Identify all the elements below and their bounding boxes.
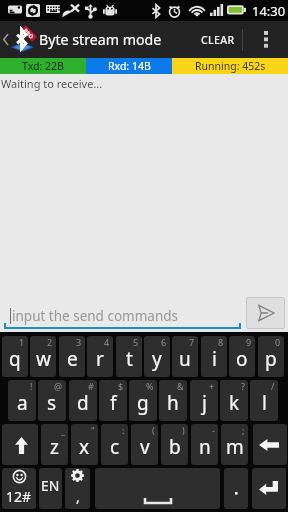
- button[interactable]: Space: [95, 468, 220, 509]
- button[interactable]: -: [191, 424, 218, 465]
- staticText: v: [140, 434, 150, 460]
- staticText: m: [226, 434, 244, 460]
- staticText: j: [202, 390, 207, 416]
- staticText: &: [177, 380, 184, 392]
- staticText: @: [54, 380, 63, 392]
- staticText: r: [96, 346, 104, 372]
- button[interactable]: ?: [220, 380, 248, 421]
- staticText: ,: [76, 487, 80, 506]
- button[interactable]: +: [190, 380, 218, 421]
- staticText: $: [118, 380, 124, 392]
- staticText: b: [169, 434, 181, 460]
- button[interactable]: ;: [221, 424, 248, 465]
- button[interactable]: !: [8, 380, 36, 421]
- button[interactable]: 8: [201, 336, 227, 377]
- staticText: Byte stream mode: [39, 30, 162, 49]
- staticText: Waiting to receive...: [1, 76, 103, 91]
- staticText: 4: [104, 336, 110, 348]
- button[interactable]: /: [250, 380, 278, 421]
- button[interactable]: ": [71, 424, 98, 465]
- staticText: x: [79, 434, 90, 460]
- button[interactable]: Rxd: 14B: [86, 58, 172, 74]
- staticText: 6: [161, 336, 167, 348]
- staticText: +: [209, 380, 215, 392]
- staticText: h: [167, 390, 179, 416]
- button[interactable]: _: [41, 424, 68, 465]
- button[interactable]: [224, 468, 248, 509]
- button[interactable]: Send: [246, 297, 285, 329]
- staticText: a: [17, 390, 28, 416]
- button[interactable]: EN: [39, 468, 62, 509]
- button[interactable]: Txd: 22B: [0, 58, 86, 74]
- button[interactable]: 5: [116, 336, 142, 377]
- button[interactable]: Backspace: [253, 424, 287, 465]
- button[interactable]: 9: [229, 336, 255, 377]
- staticText: c: [110, 434, 120, 460]
- button[interactable]: &: [159, 380, 187, 421]
- staticText: e: [67, 346, 78, 372]
- staticText: ;: [242, 424, 245, 436]
- staticText: y: [152, 346, 162, 372]
- staticText: q: [9, 346, 21, 372]
- staticText: o: [236, 346, 248, 372]
- staticText: i: [212, 346, 217, 372]
- staticText: (: [152, 424, 155, 436]
- staticText: 3: [76, 336, 82, 348]
- button[interactable]: Shift: [2, 424, 38, 465]
- staticText: %: [146, 380, 154, 392]
- button[interactable]: (: [131, 424, 158, 465]
- button[interactable]: More options: [243, 21, 288, 58]
- button[interactable]: Enter: [252, 468, 286, 509]
- button[interactable]: Running: 452s: [172, 58, 288, 74]
- staticText: input the send commands: [12, 307, 179, 325]
- staticText: t: [126, 346, 133, 372]
- staticText: Rxd: 14B: [108, 59, 151, 73]
- button[interactable]: 2: [30, 336, 56, 377]
- staticText: w: [36, 346, 51, 372]
- button[interactable]: CLEAR: [196, 21, 242, 58]
- staticText: s: [47, 390, 57, 416]
- staticText: -: [212, 424, 215, 436]
- staticText: /: [271, 380, 275, 392]
- staticText: d: [77, 390, 89, 416]
- staticText: p: [265, 346, 277, 372]
- button[interactable]: %: [129, 380, 157, 421]
- button[interactable]: Navigate up: [0, 21, 34, 58]
- button[interactable]: 7: [172, 336, 198, 377]
- staticText: 0: [275, 336, 281, 348]
- staticText: g: [137, 390, 149, 416]
- staticText: CLEAR: [201, 33, 235, 47]
- button[interactable]: :: [101, 424, 128, 465]
- staticText: Running: 452s: [195, 59, 266, 73]
- button[interactable]: 0: [258, 336, 284, 377]
- button[interactable]: Symbols: [2, 468, 36, 509]
- button[interactable]: 3: [59, 336, 85, 377]
- staticText: 12#: [6, 487, 32, 506]
- staticText: 7: [189, 336, 195, 348]
- button[interactable]: Settings: [65, 468, 90, 509]
- staticText: k: [229, 390, 240, 416]
- staticText: :: [122, 424, 125, 436]
- staticText: 14:30: [252, 2, 286, 20]
- button[interactable]: #: [69, 380, 97, 421]
- staticText: _: [61, 424, 65, 436]
- staticText: PRO: [22, 27, 36, 40]
- staticText: !: [30, 380, 33, 392]
- staticText: n: [199, 434, 211, 460]
- button[interactable]: input the send commands: [0, 290, 245, 332]
- staticText: 2: [47, 336, 53, 348]
- button[interactable]: 1: [2, 336, 28, 377]
- staticText: EN: [41, 476, 60, 495]
- button[interactable]: 6: [144, 336, 170, 377]
- button[interactable]: 4: [87, 336, 113, 377]
- staticText: 9: [246, 336, 252, 348]
- staticText: z: [50, 434, 59, 460]
- staticText: Txd: 22B: [22, 59, 64, 73]
- staticText: 1: [19, 336, 25, 348]
- button[interactable]: @: [38, 380, 66, 421]
- button[interactable]: ): [161, 424, 188, 465]
- staticText: 5: [133, 336, 139, 348]
- staticText: f: [110, 390, 117, 416]
- button[interactable]: $: [99, 380, 127, 421]
- staticText: ): [182, 424, 185, 436]
